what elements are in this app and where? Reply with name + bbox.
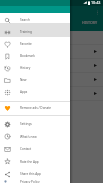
staticText: 10:43 [91,0,101,5]
button[interactable]: Contact [0,143,70,155]
staticText: Settings [20,122,32,126]
button[interactable]: More options [95,10,100,15]
button[interactable] [0,45,103,58]
button[interactable]: Settings [0,118,70,130]
button[interactable]: Remove ads / Donate [0,102,70,114]
staticText: New [20,78,27,82]
button[interactable]: Favorite [0,38,70,50]
staticText: Search [20,18,30,22]
button[interactable]: New [0,74,70,86]
button[interactable]: Privacy Policy [0,180,70,183]
staticText: Share this App [20,172,42,176]
staticText: Favorite [20,42,32,46]
button[interactable]: Bookmark [0,50,70,62]
button[interactable]: What's new [0,130,70,143]
button[interactable]: History [0,62,70,74]
staticText: Apps [20,90,28,94]
staticText: Bookmark [20,54,35,58]
button[interactable] [0,73,103,86]
staticText: Remove ads / Donate [20,106,52,110]
button[interactable]: Search [0,14,70,26]
staticText: History [20,66,31,70]
staticText: HISTORY [82,20,98,25]
button[interactable] [0,87,103,100]
button[interactable]: Training [0,26,70,38]
button[interactable]: Rate the App [0,155,70,168]
staticText: Training [20,30,32,34]
button[interactable]: Apps [0,86,70,98]
staticText: Privacy Policy [20,180,40,183]
button[interactable]: Share this App [0,168,70,180]
staticText: What's new [20,135,37,139]
staticText: Contact [20,147,32,151]
button[interactable] [0,59,103,72]
staticText: Rate the App [20,160,39,164]
